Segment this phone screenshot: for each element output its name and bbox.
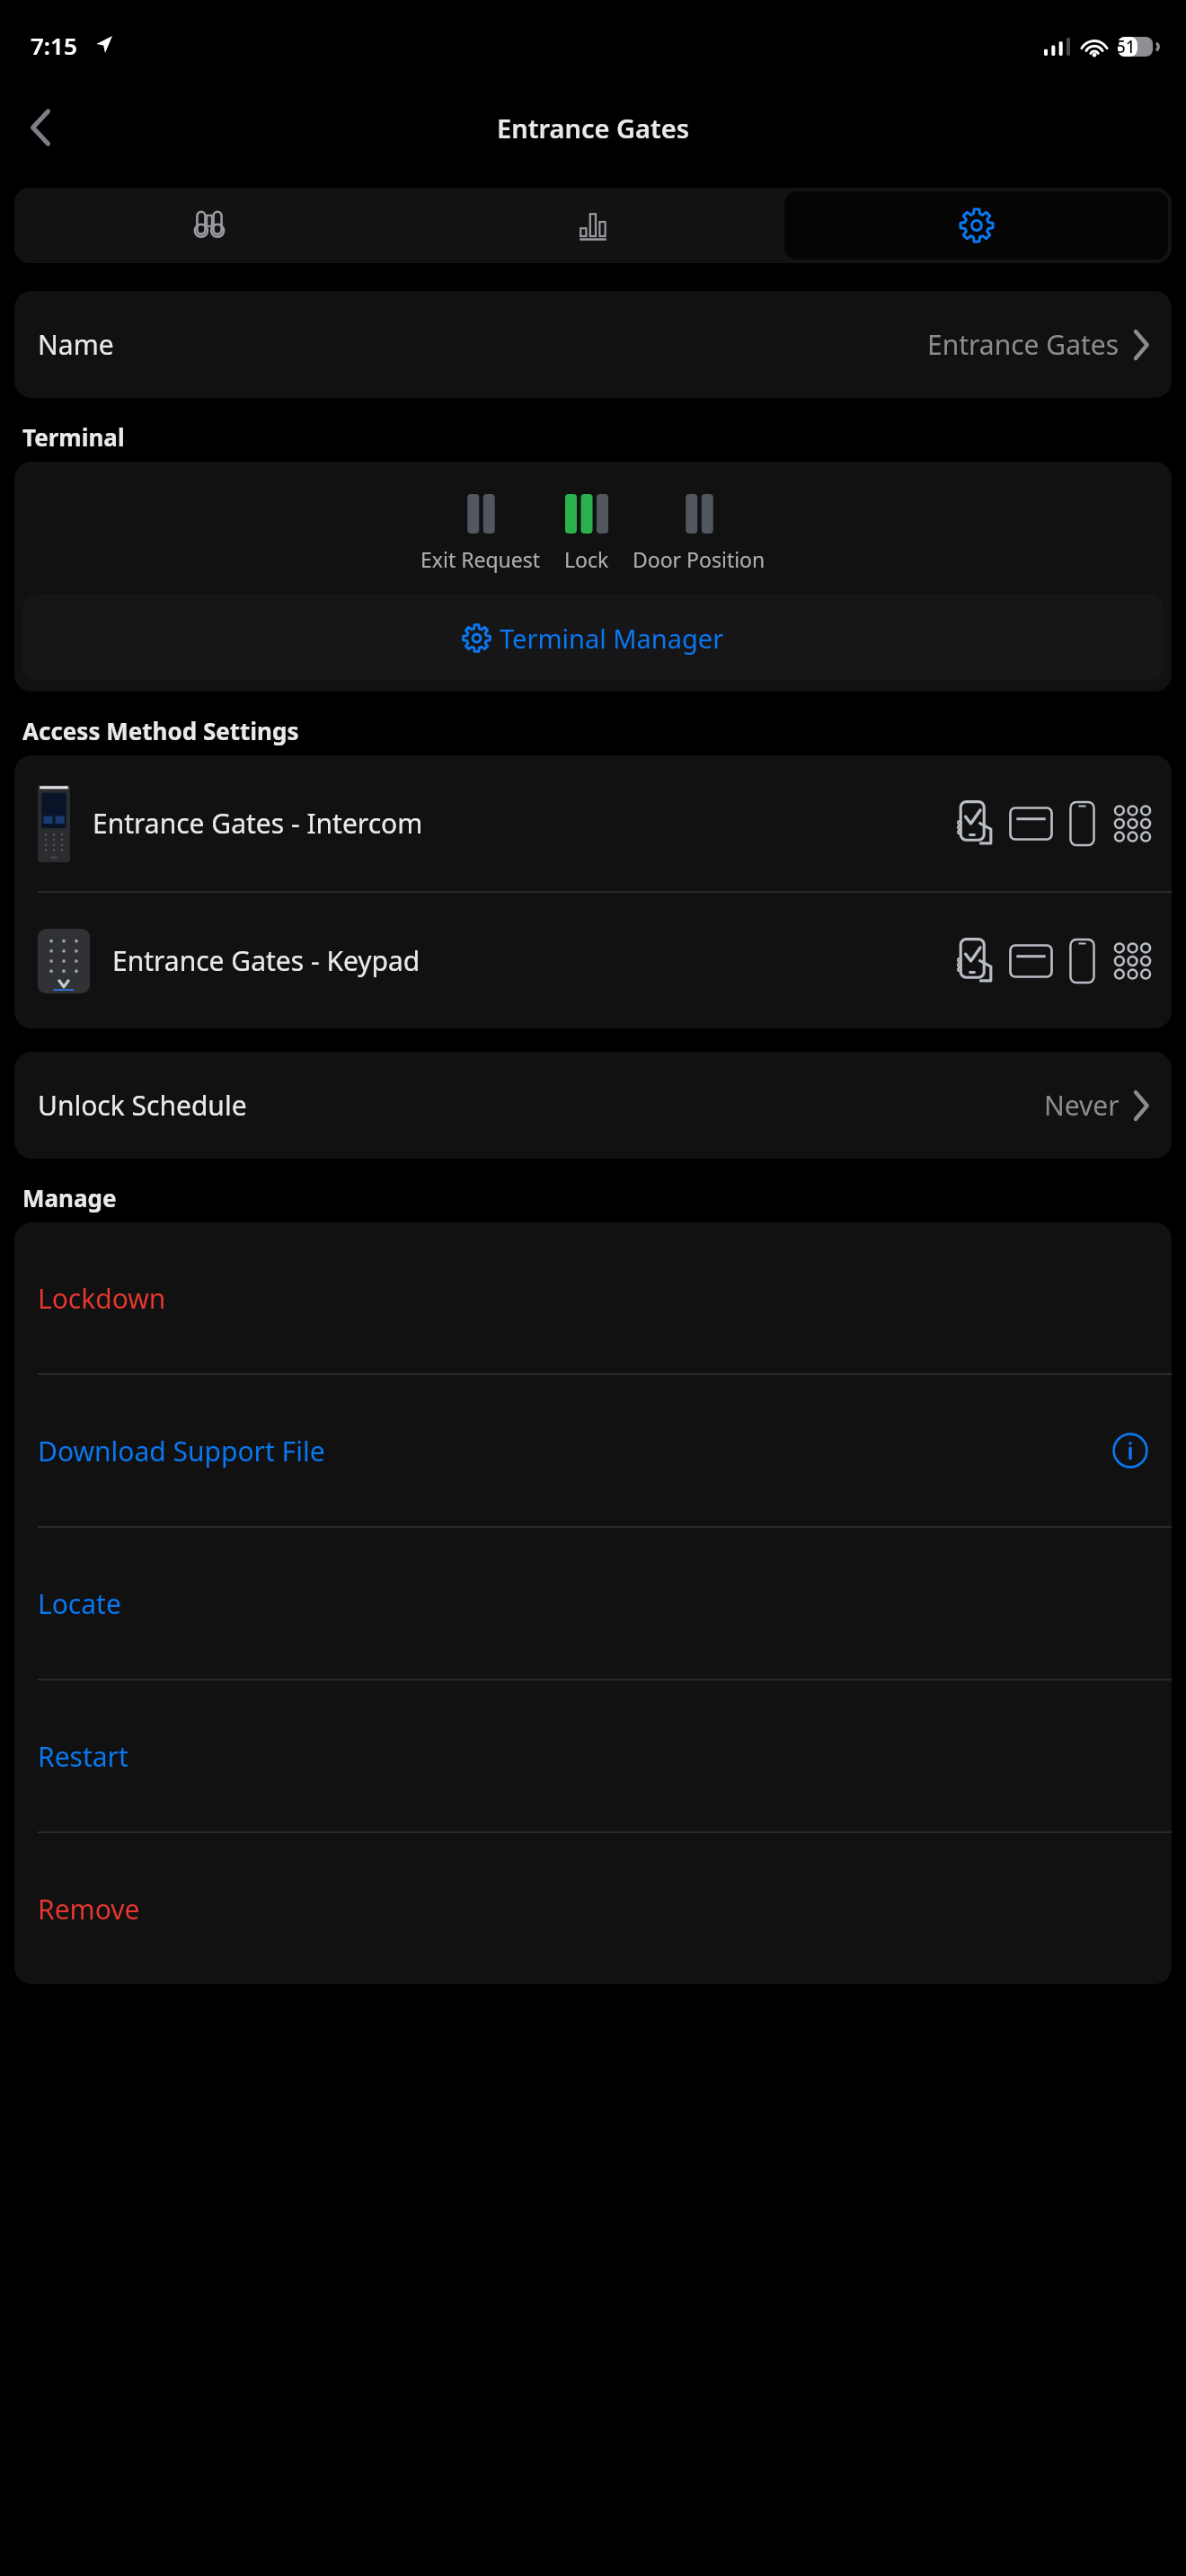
staticText: Unlock Schedule (38, 1087, 247, 1124)
staticText: Exit Request (420, 545, 541, 573)
staticText: Locate (38, 1585, 121, 1622)
staticText: 7:15 (31, 30, 77, 61)
button[interactable]: Back (13, 100, 68, 155)
button[interactable]: Remove (14, 1833, 1172, 1984)
button[interactable]: Download Support File (14, 1375, 1172, 1526)
staticText: Lock (564, 545, 609, 573)
button[interactable]: Lockdown (14, 1222, 1172, 1373)
staticText: Remove (38, 1891, 140, 1928)
staticText: Name (38, 326, 114, 363)
staticText: Entrance Gates - Intercom (93, 805, 423, 842)
button[interactable]: Locate (14, 1528, 1172, 1679)
button[interactable]: Stats (401, 191, 784, 260)
staticText: Entrance Gates - Keypad (112, 942, 420, 979)
button[interactable]: Monitor (18, 191, 401, 260)
button[interactable]: Settings (784, 191, 1168, 260)
button[interactable]: Name (14, 291, 1172, 398)
button[interactable]: Entrance Gates - Keypad (14, 893, 1172, 1028)
staticText: Entrance Gates (927, 326, 1120, 363)
staticText: Terminal (22, 421, 125, 453)
staticText: 51 (1116, 35, 1136, 58)
staticText: Entrance Gates (497, 110, 690, 146)
button[interactable]: Terminal Manager (22, 595, 1164, 681)
button[interactable]: Restart (14, 1681, 1172, 1831)
other: Info (1112, 1433, 1148, 1469)
staticText: Door Position (633, 545, 766, 573)
staticText: Terminal Manager (500, 621, 724, 656)
button[interactable]: Unlock Schedule (14, 1052, 1172, 1159)
staticText: Never (1044, 1087, 1120, 1124)
button[interactable]: Entrance Gates - Intercom (14, 755, 1172, 891)
staticText: Lockdown (38, 1280, 166, 1317)
staticText: Manage (22, 1182, 117, 1213)
staticText: Restart (38, 1738, 128, 1775)
staticText: Download Support File (38, 1433, 325, 1469)
staticText: Access Method Settings (22, 715, 299, 746)
